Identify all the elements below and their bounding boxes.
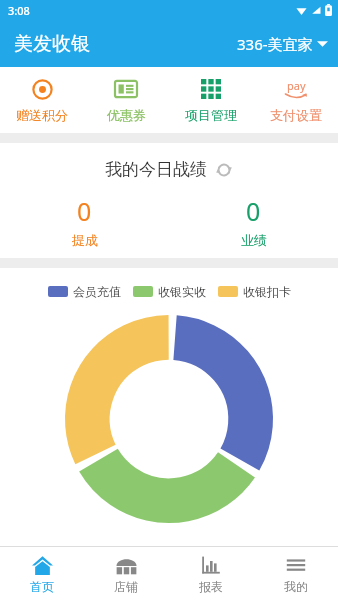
button[interactable]: 店铺 bbox=[84, 547, 168, 600]
button[interactable]: 项目管理 bbox=[168, 67, 253, 133]
button[interactable]: 我的 bbox=[253, 547, 338, 600]
button[interactable]: 首页 bbox=[0, 547, 84, 600]
button[interactable]: 优惠券 bbox=[84, 67, 168, 133]
staticText: 收银实收 bbox=[158, 284, 206, 299]
button[interactable]: 0 bbox=[169, 194, 338, 248]
staticText: 报表 bbox=[199, 579, 223, 594]
button[interactable]: pay bbox=[253, 67, 338, 133]
button[interactable]: 赠送积分 bbox=[0, 67, 84, 133]
staticText: 我的 bbox=[284, 579, 308, 594]
staticText: 提成 bbox=[72, 232, 98, 248]
button[interactable]: Refresh bbox=[215, 161, 233, 179]
button[interactable]: 0 bbox=[0, 194, 169, 248]
staticText: 店铺 bbox=[114, 579, 138, 594]
staticText: 支付设置 bbox=[270, 107, 322, 123]
staticText: 会员充值 bbox=[73, 284, 121, 299]
staticText: 收银扣卡 bbox=[243, 284, 291, 299]
staticText: 首页 bbox=[30, 579, 54, 594]
staticText: 赠送积分 bbox=[16, 107, 68, 123]
staticText: 项目管理 bbox=[185, 107, 237, 123]
staticText: 我的今日战绩 bbox=[105, 159, 207, 180]
staticText: 优惠券 bbox=[107, 107, 146, 123]
staticText: 0 bbox=[246, 194, 261, 228]
staticText: 336-美宜家 bbox=[237, 34, 313, 54]
button[interactable]: 336-美宜家 bbox=[237, 34, 328, 54]
staticText: 3:08 bbox=[8, 3, 30, 18]
staticText: 业绩 bbox=[241, 232, 267, 248]
staticText: 0 bbox=[77, 194, 92, 228]
staticText: 美发收银 bbox=[14, 32, 90, 56]
button[interactable]: 报表 bbox=[168, 547, 253, 600]
staticText: pay bbox=[287, 78, 306, 93]
